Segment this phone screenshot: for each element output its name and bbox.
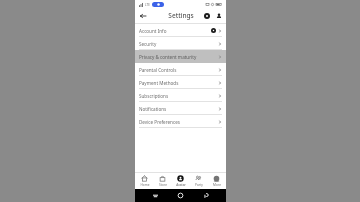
button[interactable]: More [208, 174, 225, 188]
button[interactable]: Profile [214, 11, 223, 20]
button[interactable]: Security [135, 37, 226, 50]
staticText: Security [139, 41, 157, 47]
staticText: Privacy & content maturity [139, 54, 197, 60]
button[interactable]: Back [137, 10, 148, 21]
staticText: Party [195, 183, 203, 187]
button[interactable]: Party [190, 174, 207, 188]
button[interactable]: Subscriptions [135, 89, 226, 102]
staticText: Subscriptions [139, 93, 169, 99]
button[interactable]: Back [201, 190, 212, 201]
button[interactable]: Home [136, 174, 153, 188]
button[interactable]: Account [202, 11, 211, 20]
staticText: Home [140, 183, 150, 187]
staticText: Store [159, 183, 167, 187]
button[interactable]: Payment Methods [135, 76, 226, 89]
staticText: Settings [168, 11, 194, 20]
button[interactable]: Device Preferences [135, 115, 226, 128]
button[interactable]: Avatar [172, 174, 189, 188]
button[interactable]: Parental Controls [135, 63, 226, 76]
staticText: More [213, 183, 221, 187]
button[interactable]: Recents [150, 190, 161, 201]
button[interactable]: Home [175, 190, 186, 201]
staticText: Payment Methods [139, 80, 179, 86]
button[interactable]: Notifications [135, 102, 226, 115]
button[interactable]: Privacy & content maturity [135, 50, 226, 63]
button[interactable]: Store [154, 174, 171, 188]
staticText: Parental Controls [139, 67, 177, 73]
staticText: Avatar [176, 183, 186, 187]
staticText: Device Preferences [139, 119, 180, 125]
staticText: Notifications [139, 106, 167, 112]
button[interactable]: Account Info [135, 24, 226, 37]
staticText: Account Info [139, 28, 167, 34]
staticText: LTE [145, 3, 150, 7]
